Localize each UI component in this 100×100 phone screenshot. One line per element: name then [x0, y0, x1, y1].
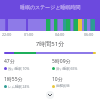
staticText: 01:00 — [24, 32, 34, 37]
staticText: 覚醒状態 — [56, 84, 70, 88]
button[interactable]: 47分 — [4, 58, 50, 71]
staticText: 睡眠のステージと睡眠時間 — [20, 4, 81, 10]
staticText: 1時55分 — [4, 76, 23, 83]
button[interactable]: 10分 — [52, 76, 100, 88]
button[interactable]: Expand — [46, 91, 54, 99]
staticText: 04:00 — [55, 32, 65, 37]
button[interactable]: 1時55分 — [4, 76, 50, 89]
staticText: 06:00 — [84, 32, 94, 37]
button[interactable]: 5時09分 — [52, 58, 100, 71]
staticText: 浅い睡眠 10% — [8, 66, 30, 71]
staticText: 5時09分 — [52, 58, 71, 65]
staticText: 10分 — [52, 76, 63, 83]
staticText: レム睡眠 24% — [8, 84, 30, 89]
staticText: 47分 — [4, 58, 15, 65]
staticText: 7時間51分 — [0, 40, 100, 48]
staticText: 22:00 — [2, 32, 12, 37]
staticText: 深い睡眠 65% — [56, 66, 78, 71]
